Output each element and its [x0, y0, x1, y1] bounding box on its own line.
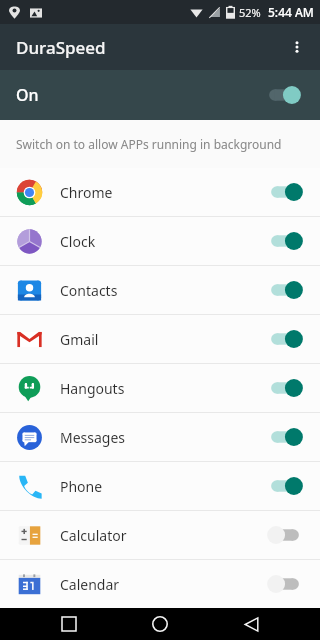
staticText: Calculator [60, 526, 127, 545]
button[interactable]: Clock [0, 217, 320, 265]
button[interactable]: Gmail [0, 315, 320, 363]
staticText: Switch on to allow APPs running in backg… [16, 136, 282, 152]
button[interactable]: Chrome [0, 168, 320, 216]
button[interactable]: Hangouts [0, 364, 320, 412]
button[interactable]: On [264, 422, 306, 452]
button[interactable]: Calculator [0, 511, 320, 559]
button[interactable]: Messages [0, 413, 320, 461]
button[interactable]: On [264, 471, 306, 501]
button[interactable]: Off [264, 569, 306, 599]
staticText: On [16, 84, 39, 106]
button[interactable]: Off [264, 520, 306, 550]
button[interactable]: On [264, 373, 306, 403]
staticText: Chrome [60, 183, 113, 202]
button[interactable]: Recent apps [47, 608, 91, 640]
staticText: DuraSpeed [16, 36, 106, 59]
staticText: Gmail [60, 330, 99, 349]
staticText: Hangouts [60, 379, 125, 398]
button[interactable]: On [264, 324, 306, 354]
staticText: Calendar [60, 575, 120, 594]
button[interactable]: Calendar [0, 560, 320, 608]
staticText: Messages [60, 428, 126, 447]
button[interactable]: Back [229, 608, 273, 640]
button[interactable]: On [264, 177, 306, 207]
button[interactable]: On [264, 275, 306, 305]
button[interactable]: On [262, 80, 304, 110]
button[interactable]: On [0, 70, 320, 120]
staticText: 5:44 AM [268, 4, 314, 20]
button[interactable]: More options [274, 24, 320, 70]
staticText: Clock [60, 232, 96, 251]
button[interactable]: Home [138, 608, 182, 640]
button[interactable]: Phone [0, 462, 320, 510]
staticText: 52% [239, 5, 261, 20]
staticText: Phone [60, 477, 103, 496]
staticText: Contacts [60, 281, 118, 300]
button[interactable]: Contacts [0, 266, 320, 314]
button[interactable]: On [264, 226, 306, 256]
